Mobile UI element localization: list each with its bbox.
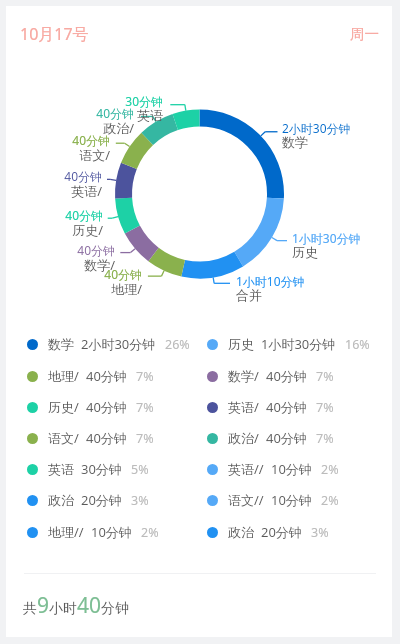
staticText: 历史/ bbox=[0, 221, 103, 239]
button[interactable]: 历史/ bbox=[23, 396, 154, 418]
button[interactable]: 政治 bbox=[23, 489, 149, 511]
staticText: 数学/ bbox=[0, 256, 115, 274]
staticText: 英语 bbox=[33, 107, 163, 123]
staticText: 40分钟 bbox=[86, 398, 127, 416]
staticText: 合并 bbox=[236, 287, 262, 303]
staticText: 2小时30分钟 bbox=[282, 120, 351, 136]
staticText: 40分钟 bbox=[12, 266, 142, 282]
staticText: 40分钟 bbox=[0, 132, 110, 148]
staticText: 40分钟 bbox=[0, 168, 102, 184]
staticText: 政治/ bbox=[228, 429, 259, 447]
staticText: 2% bbox=[141, 524, 159, 541]
staticText: 地理// bbox=[48, 523, 84, 541]
button[interactable]: 数学 bbox=[23, 333, 190, 355]
staticText: 10分钟 bbox=[91, 523, 132, 541]
button[interactable]: 周一 bbox=[350, 25, 379, 43]
button[interactable]: 英语/ bbox=[203, 396, 334, 418]
staticText: 30分钟 bbox=[33, 93, 163, 109]
button[interactable]: 数学/ bbox=[203, 365, 334, 387]
staticText: 数学 bbox=[282, 134, 308, 150]
staticText: 40分钟 bbox=[0, 207, 103, 223]
staticText: 40分钟 bbox=[4, 105, 134, 121]
staticText: 7% bbox=[316, 399, 334, 416]
staticText: 26% bbox=[165, 336, 190, 353]
staticText: 1小时30分钟 bbox=[261, 335, 336, 353]
staticText: 英语// bbox=[228, 460, 264, 478]
staticText: 语文/ bbox=[0, 146, 110, 164]
staticText: 40分钟 bbox=[86, 429, 127, 447]
staticText: 语文/ bbox=[48, 429, 79, 447]
staticText: 数学 bbox=[48, 336, 74, 352]
staticText: 40分钟 bbox=[266, 429, 307, 447]
staticText: 政治/ bbox=[4, 119, 134, 137]
staticText: 地理/ bbox=[12, 280, 142, 298]
staticText: 历史 bbox=[228, 336, 254, 352]
staticText: 历史/ bbox=[48, 398, 79, 416]
staticText: 5% bbox=[131, 461, 149, 478]
staticText: 20分钟 bbox=[81, 491, 122, 509]
staticText: 40分钟 bbox=[0, 242, 115, 258]
staticText: 语文// bbox=[228, 491, 264, 509]
staticText: 1小时30分钟 bbox=[292, 230, 361, 246]
staticText: 数学/ bbox=[228, 367, 259, 385]
button[interactable]: 地理/ bbox=[23, 365, 154, 387]
staticText: 7% bbox=[136, 368, 154, 385]
staticText: 1小时10分钟 bbox=[236, 273, 305, 289]
staticText: 40分钟 bbox=[266, 398, 307, 416]
staticText: 2% bbox=[321, 492, 339, 509]
button[interactable]: 政治 bbox=[203, 521, 329, 543]
staticText: 英语 bbox=[48, 461, 74, 477]
staticText: 3% bbox=[131, 492, 149, 509]
button[interactable]: 英语 bbox=[23, 458, 149, 480]
button[interactable]: 历史 bbox=[203, 333, 370, 355]
staticText: 3% bbox=[311, 524, 329, 541]
staticText: 政治 bbox=[228, 524, 254, 540]
button[interactable]: 10月17号 bbox=[20, 23, 89, 45]
staticText: 10分钟 bbox=[271, 491, 312, 509]
staticText: 10分钟 bbox=[271, 460, 312, 478]
staticText: 20分钟 bbox=[261, 523, 302, 541]
staticText: 地理/ bbox=[48, 367, 79, 385]
staticText: 7% bbox=[316, 430, 334, 447]
staticText: 英语/ bbox=[0, 182, 102, 200]
staticText: 7% bbox=[136, 399, 154, 416]
staticText: 共9小时40分钟 bbox=[23, 591, 130, 620]
button[interactable]: 地理// bbox=[23, 521, 159, 543]
staticText: 40分钟 bbox=[86, 367, 127, 385]
staticText: 政治 bbox=[48, 492, 74, 508]
staticText: 2% bbox=[321, 461, 339, 478]
staticText: 2小时30分钟 bbox=[81, 335, 156, 353]
staticText: 周一 bbox=[350, 25, 379, 43]
button[interactable]: 语文// bbox=[203, 489, 339, 511]
staticText: 7% bbox=[316, 368, 334, 385]
staticText: 历史 bbox=[292, 244, 318, 260]
staticText: 30分钟 bbox=[81, 460, 122, 478]
button[interactable]: 语文/ bbox=[23, 427, 154, 449]
button[interactable]: 政治/ bbox=[203, 427, 334, 449]
staticText: 10月17号 bbox=[20, 23, 89, 45]
staticText: 40分钟 bbox=[266, 367, 307, 385]
button[interactable]: 英语// bbox=[203, 458, 339, 480]
staticText: 16% bbox=[345, 336, 370, 353]
staticText: 7% bbox=[136, 430, 154, 447]
staticText: 英语/ bbox=[228, 398, 259, 416]
